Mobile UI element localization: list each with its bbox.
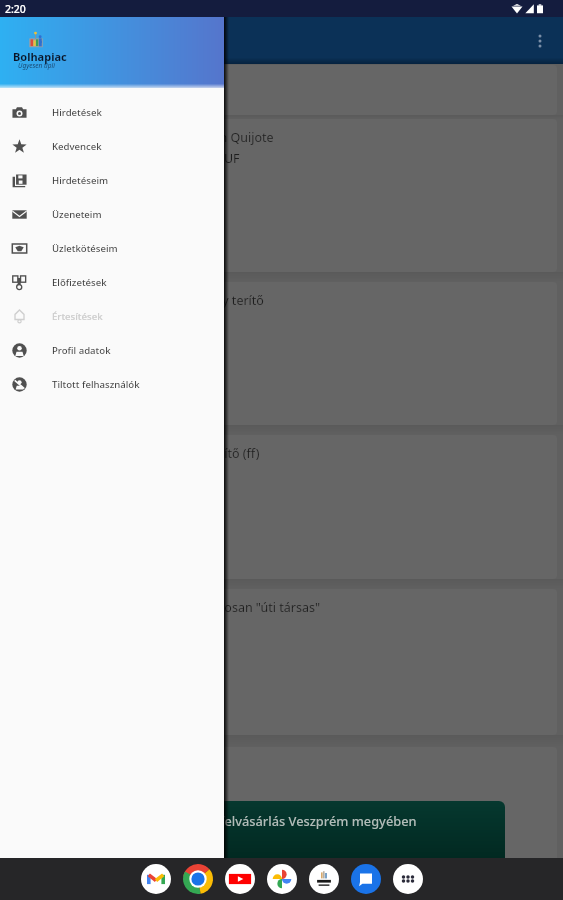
button[interactable] bbox=[6, 747, 557, 867]
button[interactable]: Üzeneteim bbox=[0, 197, 224, 231]
button[interactable]: Photos bbox=[261, 858, 303, 900]
staticText: Bútor felvásárlás Veszprém megyében bbox=[182, 812, 417, 829]
staticText: Üzletkötéseim bbox=[52, 242, 118, 255]
staticText: 2:20 bbox=[5, 2, 26, 16]
button[interactable]: Hirdetések bbox=[0, 95, 224, 129]
button[interactable]: Előfizetések bbox=[0, 265, 224, 299]
button[interactable]: Tiltott felhasználók bbox=[0, 367, 224, 401]
button[interactable]: Antik kézzel horgolt nagy terítő bbox=[6, 282, 557, 425]
button[interactable]: Gmail bbox=[135, 858, 177, 900]
staticText: Ügyesen tipli bbox=[18, 61, 55, 70]
button[interactable]: YouTube bbox=[219, 858, 261, 900]
staticText: Bolhapiac bbox=[13, 49, 67, 64]
button[interactable]: Kedvencek bbox=[0, 129, 224, 163]
staticText: Nem kutya, hanem pontosan "úti társas" bbox=[82, 599, 321, 616]
button[interactable]: Hirdetéseim bbox=[0, 163, 224, 197]
button[interactable]: All apps bbox=[387, 858, 429, 900]
button[interactable]: Értesítések bbox=[0, 299, 224, 333]
button[interactable]: Miguel de Cervantes: Don Quijote bbox=[6, 119, 557, 272]
button[interactable]: Nem kutya, hanem pontosan "úti társas" bbox=[6, 589, 557, 735]
staticText: Megvásárolható: 2 500 HUF bbox=[78, 150, 240, 167]
button[interactable]: Bútor felvásárlás Veszprém megyében bbox=[0, 801, 505, 858]
staticText: Antik kézzel horgolt nagy terítő bbox=[81, 292, 264, 309]
staticText: Profil adatok bbox=[52, 344, 111, 357]
button[interactable]: Pioneer sztereó erősítő (ff) bbox=[6, 435, 557, 579]
button[interactable]: More options bbox=[520, 21, 560, 61]
button[interactable]: Profil adatok bbox=[0, 333, 224, 367]
button[interactable] bbox=[6, 65, 557, 115]
staticText: Értesítések bbox=[52, 310, 103, 323]
staticText: Hirdetések bbox=[52, 106, 102, 119]
staticText: Miguel de Cervantes: Don Quijote bbox=[76, 129, 274, 146]
staticText: Tiltott felhasználók bbox=[52, 378, 140, 391]
staticText: Hirdetéseim bbox=[52, 174, 109, 187]
button[interactable]: Chrome bbox=[177, 858, 219, 900]
button[interactable]: Bolhapiac bbox=[303, 858, 345, 900]
staticText: Előfizetések bbox=[52, 276, 107, 289]
staticText: Kedvencek bbox=[52, 140, 102, 153]
staticText: Üzeneteim bbox=[52, 208, 102, 221]
button[interactable]: Messages bbox=[345, 858, 387, 900]
button[interactable]: Üzletkötéseim bbox=[0, 231, 224, 265]
staticText: Pioneer sztereó erősítő (ff) bbox=[104, 445, 260, 462]
